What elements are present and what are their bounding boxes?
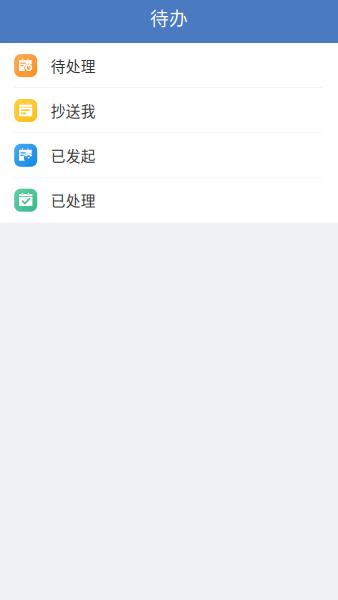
- button[interactable]: 抄送我: [0, 88, 338, 133]
- button[interactable]: 待处理: [0, 43, 338, 88]
- button[interactable]: 已发起: [0, 133, 338, 178]
- staticText: 已处理: [51, 190, 96, 211]
- button[interactable]: 已处理: [0, 178, 338, 223]
- staticText: 待处理: [51, 55, 96, 76]
- staticText: 已发起: [51, 145, 96, 166]
- staticText: 抄送我: [51, 100, 96, 121]
- staticText: 待办: [150, 4, 188, 31]
